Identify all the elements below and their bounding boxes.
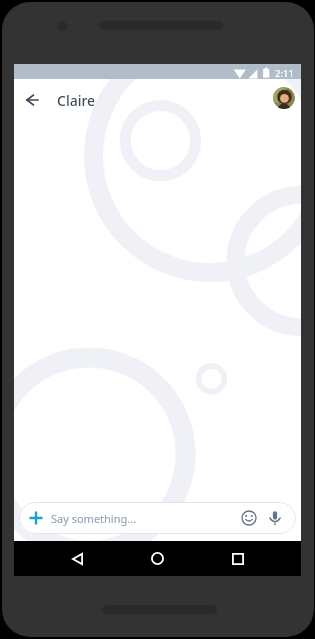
button[interactable]: Insert emoji	[236, 505, 262, 531]
button[interactable]: Contact profile photo	[273, 87, 295, 109]
staticText: Say something...	[51, 511, 137, 526]
button[interactable]: Home	[140, 541, 174, 576]
button[interactable]: Say something...	[19, 502, 296, 534]
staticText: 2:11	[275, 67, 294, 80]
button[interactable]: Back	[60, 541, 94, 576]
button[interactable]: Back	[20, 87, 46, 113]
button[interactable]: Voice input	[262, 505, 288, 531]
button[interactable]: Recent apps	[221, 541, 255, 576]
staticText: Claire	[57, 91, 96, 110]
